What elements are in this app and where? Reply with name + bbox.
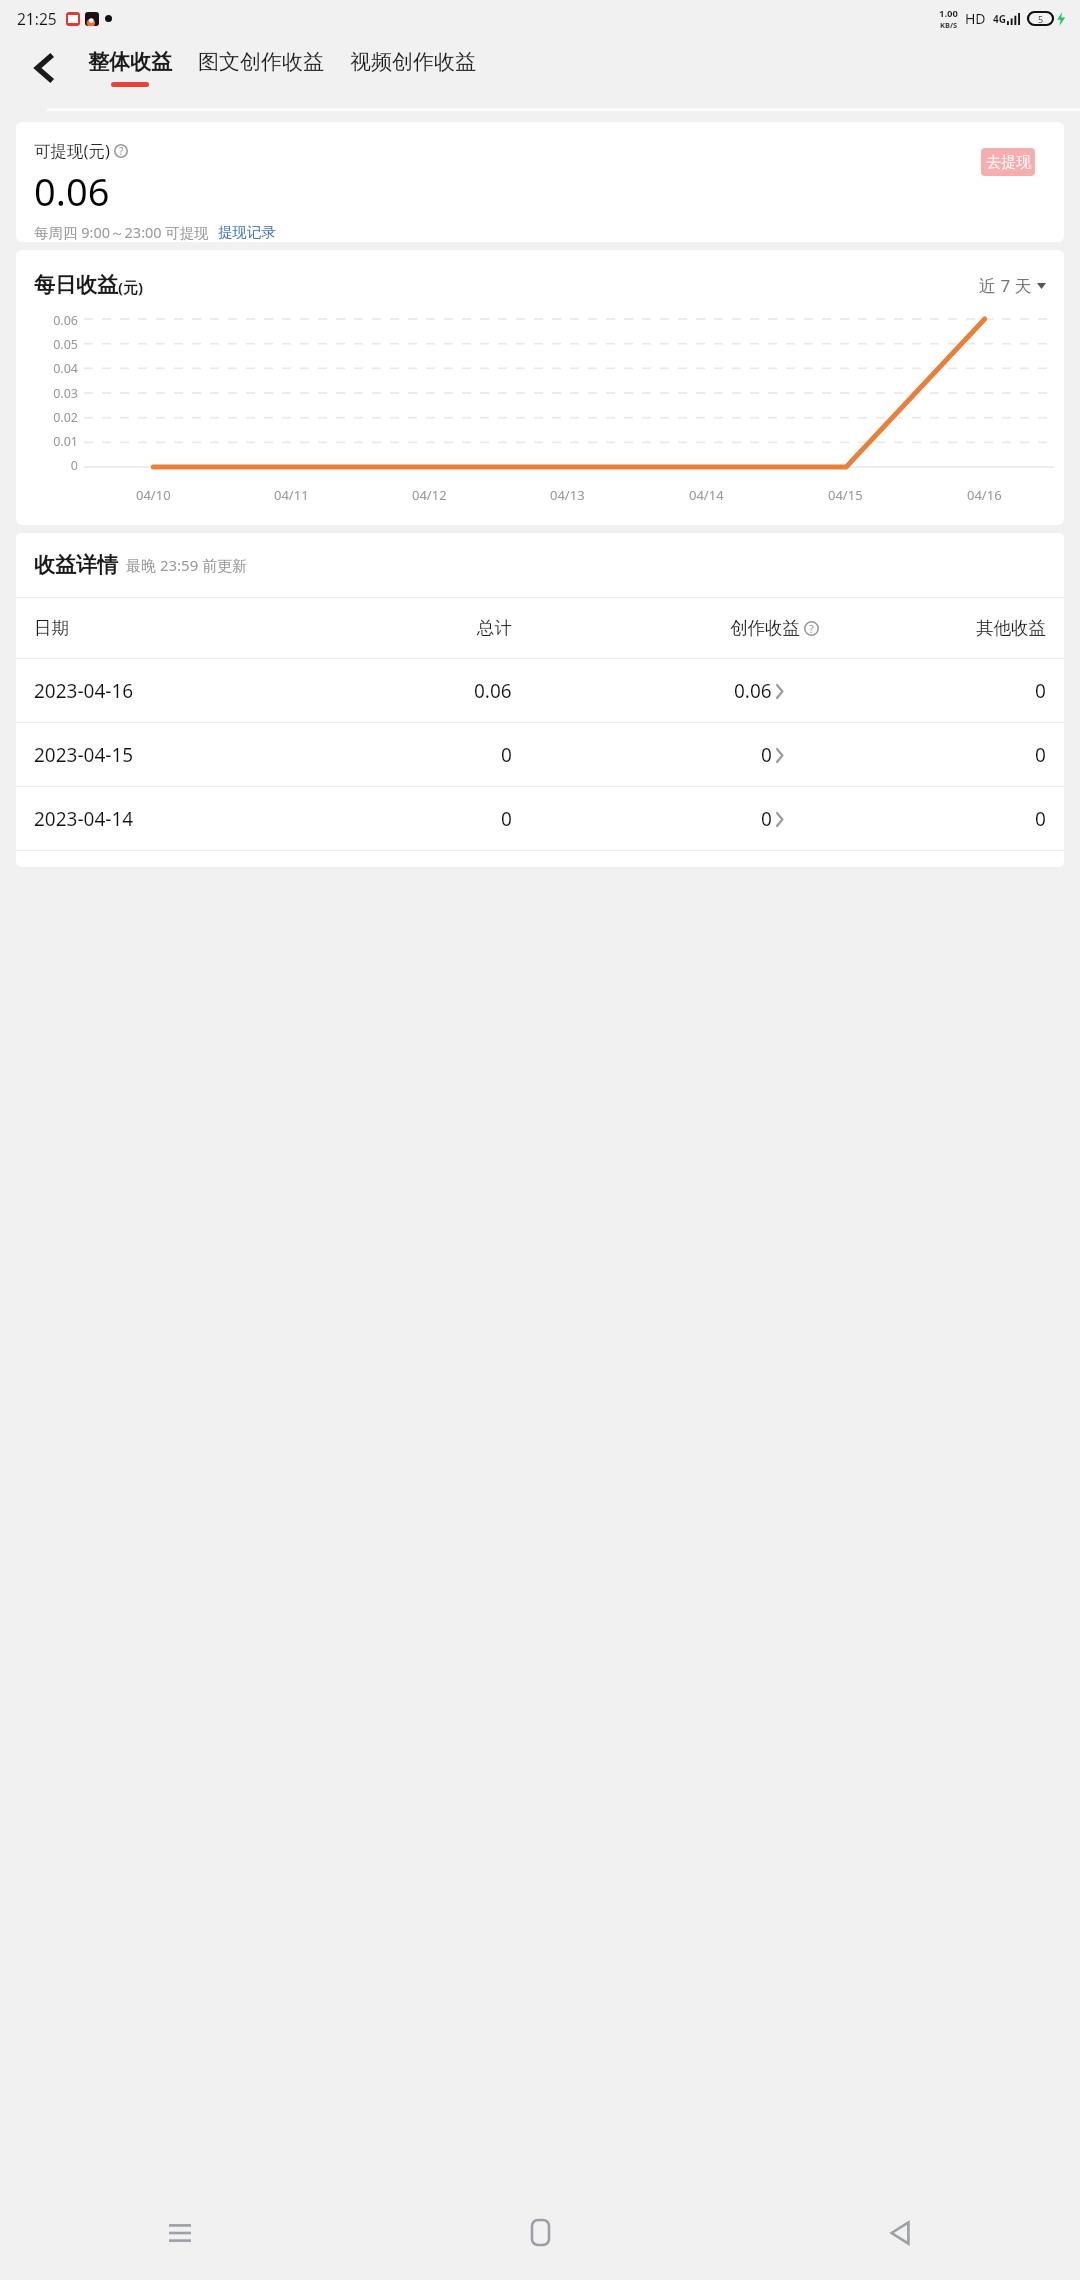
staticText: 0.01 [53, 433, 78, 450]
staticText: 收益详情 [34, 552, 118, 578]
staticText: 0 [70, 457, 78, 474]
staticText: 04/14 [689, 486, 724, 504]
staticText: 0.02 [53, 409, 78, 426]
staticText: 04/12 [412, 486, 447, 504]
button[interactable]: 提现记录 [218, 223, 276, 241]
button[interactable]: Back [720, 2185, 1080, 2280]
staticText: 2023-04-16 [34, 678, 134, 704]
button[interactable]: 图文创作收益 [198, 37, 324, 111]
button[interactable]: 2023-04-15 [16, 723, 1064, 786]
staticText: 04/13 [550, 486, 585, 504]
staticText: 去提现 [986, 153, 1031, 172]
staticText: 0.03 [53, 385, 78, 402]
staticText: 2023-04-15 [34, 742, 134, 768]
staticText: 04/16 [967, 486, 1002, 504]
staticText: 其他收益 [976, 617, 1046, 639]
staticText: (元) [118, 277, 144, 297]
staticText: 0.06 [474, 678, 512, 704]
button[interactable]: 整体收益 [88, 37, 172, 111]
staticText: 0 [1035, 678, 1046, 704]
staticText: 最晚 23:59 前更新 [126, 555, 248, 575]
staticText: 0.04 [53, 360, 78, 377]
staticText: 04/10 [136, 486, 171, 504]
staticText: 1.00 [939, 7, 958, 20]
staticText: 总计 [477, 617, 512, 639]
staticText: 04/15 [828, 486, 863, 504]
staticText: ? [809, 621, 814, 636]
staticText: 04/11 [274, 486, 309, 504]
button[interactable]: 近 7 天 [979, 274, 1046, 297]
staticText: 0 [1035, 742, 1046, 768]
staticText: 创作收益 [730, 617, 800, 639]
staticText: 0 [501, 742, 512, 768]
staticText: 0.05 [53, 336, 78, 353]
staticText: 21:25 [17, 8, 57, 29]
button[interactable]: Help [804, 621, 819, 636]
staticText: 0.06 [34, 165, 110, 217]
staticText: 每周四 9:00～23:00 可提现 [34, 222, 209, 242]
staticText: 0.06 [734, 678, 772, 704]
button[interactable]: 2023-04-16 [16, 659, 1064, 722]
staticText: 可提现(元) [34, 139, 110, 162]
staticText: 视频创作收益 [350, 49, 476, 75]
staticText: 4G [993, 12, 1006, 26]
button[interactable]: Help [114, 144, 128, 158]
button[interactable]: 视频创作收益 [350, 37, 476, 111]
button[interactable]: 2023-04-14 [16, 787, 1064, 850]
button[interactable]: Back [0, 37, 88, 111]
staticText: 日期 [34, 617, 69, 639]
staticText: 每日收益 [34, 272, 118, 298]
staticText: 5 [1038, 13, 1044, 25]
staticText: 整体收益 [88, 49, 172, 75]
staticText: HD [965, 9, 986, 28]
staticText: 近 7 天 [979, 274, 1032, 297]
button[interactable]: Recents [0, 2185, 360, 2280]
staticText: KB/S [940, 20, 958, 30]
staticText: 0 [761, 742, 772, 768]
staticText: 图文创作收益 [198, 49, 324, 75]
button[interactable]: Home [360, 2185, 720, 2280]
staticText: 0 [1035, 806, 1046, 832]
staticText: ? [119, 144, 124, 158]
staticText: 2023-04-14 [34, 806, 134, 832]
button[interactable]: 去提现 [981, 148, 1035, 176]
staticText: 提现记录 [218, 223, 276, 241]
staticText: 0 [501, 806, 512, 832]
staticText: 0 [761, 806, 772, 832]
staticText: 0.06 [53, 312, 78, 329]
